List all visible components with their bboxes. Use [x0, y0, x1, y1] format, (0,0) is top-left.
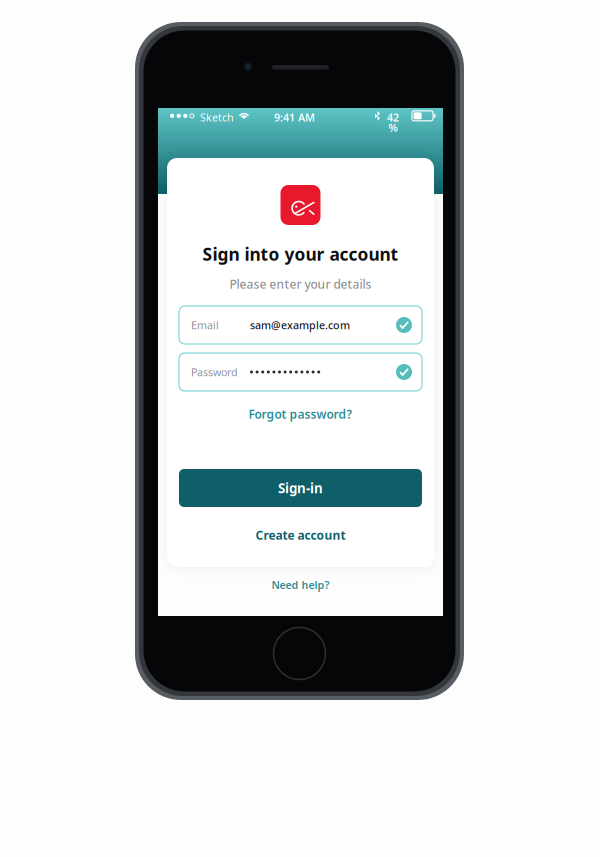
- button[interactable]: Forgot password?: [240, 402, 360, 426]
- staticText: 9:41 AM: [274, 110, 315, 124]
- staticText: Email: [191, 318, 219, 332]
- staticText: Sketch: [200, 110, 234, 124]
- staticText: %: [388, 120, 397, 135]
- staticText: Need help?: [271, 578, 329, 592]
- staticText: Create account: [255, 527, 345, 543]
- staticText: 42: [387, 110, 399, 124]
- button[interactable]: Sign-in: [179, 469, 422, 507]
- staticText: sam@example.com: [250, 318, 350, 332]
- staticText: Forgot password?: [248, 406, 352, 422]
- button[interactable]: Create account: [235, 523, 365, 547]
- staticText: Password: [191, 365, 238, 379]
- button[interactable]: Need help?: [259, 572, 341, 598]
- staticText: Please enter your details: [229, 276, 371, 292]
- staticText: Sign-in: [278, 479, 323, 497]
- staticText: Sign into your account: [202, 242, 398, 265]
